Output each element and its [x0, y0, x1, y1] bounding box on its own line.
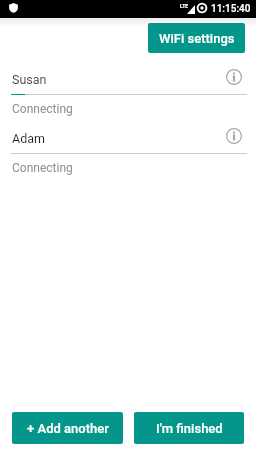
- staticText: Connecting: [12, 102, 73, 116]
- staticText: + Add another: [27, 421, 109, 436]
- staticText: Susan: [12, 72, 47, 87]
- button[interactable]: + Add another: [12, 412, 123, 444]
- staticText: 11:15:40: [211, 3, 251, 15]
- staticText: Connecting: [12, 161, 73, 175]
- button[interactable]: Info: [222, 65, 246, 89]
- staticText: Adam: [12, 131, 45, 146]
- staticText: LTE: [180, 3, 189, 9]
- button[interactable]: I'm finished: [134, 412, 244, 444]
- staticText: I'm finished: [156, 421, 223, 436]
- staticText: WiFi settings: [159, 31, 235, 46]
- button[interactable]: WiFi settings: [148, 23, 245, 53]
- button[interactable]: Info: [222, 124, 246, 148]
